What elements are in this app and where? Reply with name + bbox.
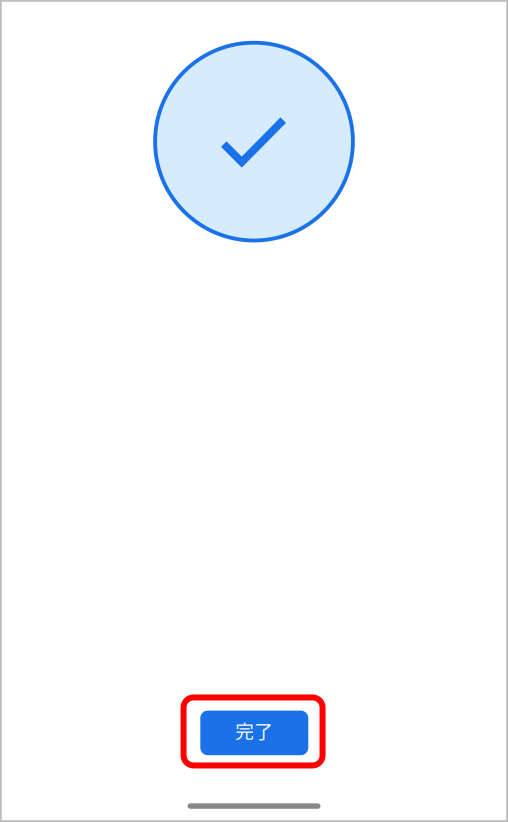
staticText: 完了 <box>235 717 273 744</box>
button[interactable]: 完了 <box>200 711 308 755</box>
